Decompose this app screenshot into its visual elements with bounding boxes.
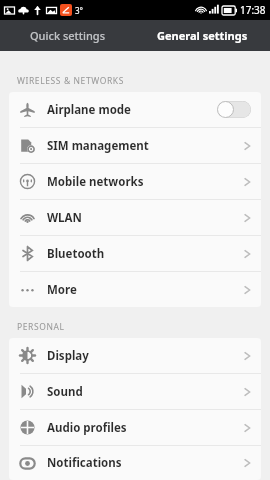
button[interactable]: Sound: [9, 374, 261, 409]
staticText: Sound: [47, 384, 83, 400]
staticText: Audio profiles: [47, 420, 127, 436]
staticText: General settings: [157, 28, 248, 43]
button[interactable]: Notifications: [9, 446, 261, 480]
staticText: Display: [47, 348, 89, 364]
button[interactable]: Airplane mode: [9, 92, 261, 127]
button[interactable]: WLAN: [9, 200, 261, 235]
staticText: Mobile networks: [47, 174, 144, 190]
staticText: More: [47, 282, 77, 298]
button[interactable]: General settings: [135, 20, 270, 51]
button[interactable]: More: [9, 272, 261, 307]
staticText: PERSONAL: [17, 321, 65, 333]
button[interactable]: SIM management: [9, 128, 261, 163]
staticText: Quick settings: [30, 28, 106, 43]
button[interactable]: Bluetooth: [9, 236, 261, 271]
button[interactable]: Display: [9, 338, 261, 373]
staticText: 3°: [75, 5, 83, 16]
staticText: Notifications: [47, 455, 122, 471]
button[interactable]: Airplane mode toggle: [217, 101, 251, 118]
staticText: WIRELESS & NETWORKS: [17, 75, 124, 87]
staticText: SIM management: [47, 138, 149, 154]
staticText: WLAN: [47, 210, 82, 226]
staticText: Airplane mode: [47, 102, 131, 118]
button[interactable]: Quick settings: [0, 20, 135, 51]
button[interactable]: Mobile networks: [9, 164, 261, 199]
button[interactable]: Audio profiles: [9, 410, 261, 445]
staticText: 17:38: [240, 3, 266, 17]
staticText: Bluetooth: [47, 246, 105, 262]
